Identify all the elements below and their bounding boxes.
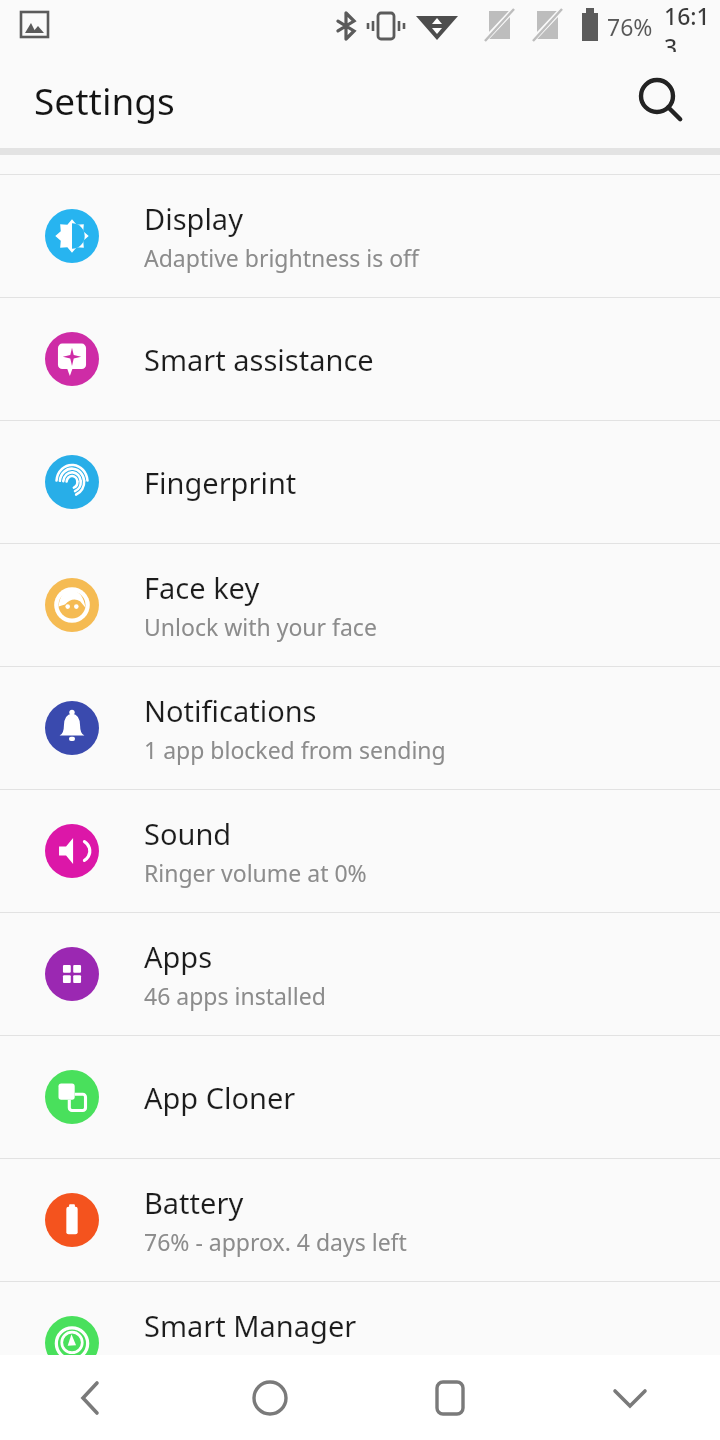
staticText: Sound (144, 814, 232, 853)
staticText: 1 app blocked from sending (144, 734, 446, 765)
button[interactable]: Face key (0, 544, 720, 666)
staticText: Smart Manager (144, 1306, 357, 1345)
staticText: Apps (144, 937, 213, 976)
button[interactable]: Home (180, 1355, 360, 1440)
button[interactable]: Fingerprint (0, 421, 720, 543)
staticText: Settings (34, 75, 175, 125)
staticText: Fingerprint (144, 463, 297, 502)
button[interactable]: App Cloner (0, 1036, 720, 1158)
staticText: Battery (144, 1183, 244, 1222)
button[interactable]: Smart Manager (0, 1282, 720, 1404)
button[interactable]: Battery (0, 1159, 720, 1281)
button[interactable]: Search (622, 62, 698, 138)
staticText: Face key (144, 568, 260, 607)
staticText: Notifications (144, 691, 317, 730)
staticText: Smart assistance (144, 340, 374, 379)
button[interactable]: Recent apps (360, 1355, 540, 1440)
button[interactable]: Sound (0, 790, 720, 912)
button[interactable]: Smart assistance (0, 298, 720, 420)
button[interactable]: Notifications (0, 667, 720, 789)
staticText: Display (144, 199, 243, 238)
button[interactable]: Hide (540, 1355, 720, 1440)
staticText: 16:13 (664, 0, 720, 52)
staticText: App Cloner (144, 1078, 296, 1117)
button[interactable]: Apps (0, 913, 720, 1035)
staticText: 46 apps installed (144, 980, 326, 1011)
staticText: Unlock with your face (144, 611, 377, 642)
staticText: 76% (607, 11, 653, 42)
staticText: 76% - approx. 4 days left (144, 1226, 407, 1257)
staticText: Ringer volume at 0% (144, 857, 367, 888)
button[interactable]: Display (0, 175, 720, 297)
staticText: Adaptive brightness is off (144, 242, 419, 273)
button[interactable]: Back (0, 1355, 180, 1440)
